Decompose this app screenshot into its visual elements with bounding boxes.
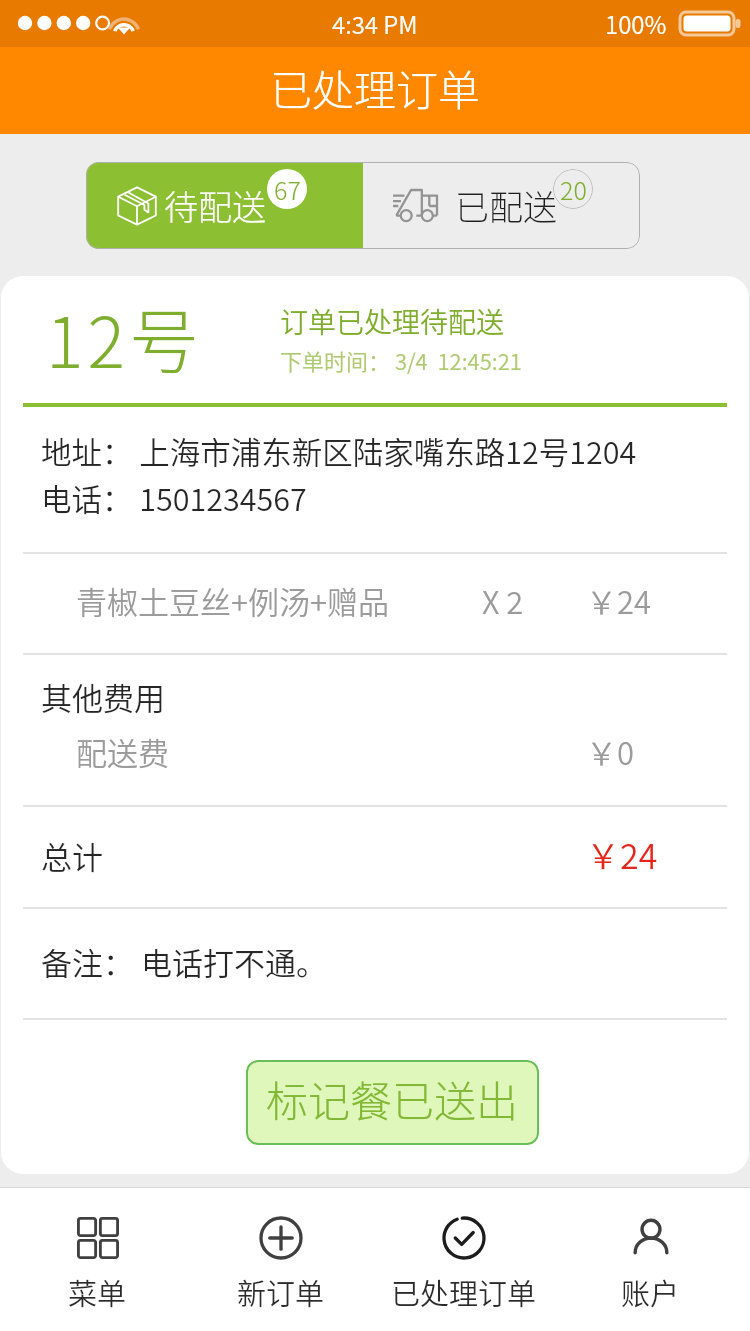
staticText: 12号: [46, 287, 203, 388]
staticText: ￥24: [586, 830, 658, 879]
staticText: ￥24: [586, 578, 652, 623]
button[interactable]: 标记餐已送出: [246, 1060, 539, 1145]
staticText: ￥0: [586, 729, 635, 774]
button[interactable]: 待配送: [86, 162, 363, 249]
button[interactable]: Menu: [7, 1187, 187, 1331]
button[interactable]: Account: [560, 1187, 740, 1331]
staticText: 电话： 1501234567: [41, 476, 307, 520]
button[interactable]: Processed orders: [374, 1187, 554, 1331]
staticText: 标记餐已送出: [266, 1068, 519, 1129]
staticText: 100%: [605, 6, 667, 41]
staticText: 备注： 电话打不通。: [41, 939, 327, 984]
staticText: 菜单: [68, 1271, 127, 1313]
staticText: 其他费用: [41, 674, 165, 719]
staticText: 订单已处理待配送: [280, 301, 505, 342]
staticText: 20: [560, 171, 587, 207]
staticText: 下单时间： 3/4 12:45:21: [280, 344, 522, 376]
staticText: 已处理订单: [391, 1271, 537, 1313]
button[interactable]: New orders: [191, 1187, 371, 1331]
staticText: 地址： 上海市浦东新区陆家嘴东路12号1204: [41, 429, 637, 473]
staticText: X 2: [482, 578, 524, 623]
button[interactable]: 已配送: [363, 162, 640, 249]
staticText: 新订单: [237, 1271, 325, 1313]
staticText: 已处理订单: [270, 57, 481, 118]
staticText: 账户: [621, 1271, 680, 1313]
staticText: 已配送: [455, 181, 557, 230]
staticText: 待配送: [164, 181, 266, 230]
staticText: 67: [274, 171, 301, 207]
staticText: 青椒土豆丝+例汤+赠品: [76, 578, 390, 623]
staticText: 4:34 PM: [332, 6, 418, 41]
staticText: 总计: [41, 833, 103, 878]
staticText: 配送费: [76, 729, 169, 774]
